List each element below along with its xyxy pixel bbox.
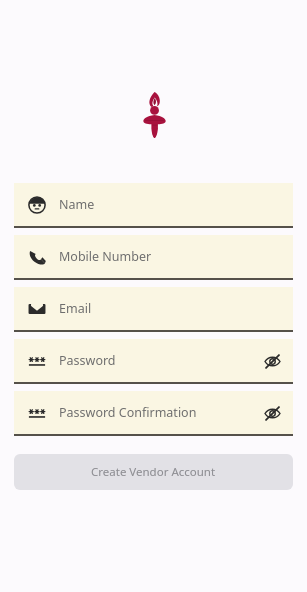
other: App logo (141, 92, 167, 138)
button[interactable]: Toggle password visibility (255, 396, 289, 430)
staticText: Email (59, 300, 92, 317)
staticText: Create Vendor Account (91, 464, 216, 480)
button[interactable]: Name (14, 183, 293, 228)
button[interactable]: Password (14, 339, 293, 384)
staticText: Password (59, 352, 116, 369)
button[interactable]: Toggle password visibility (255, 344, 289, 378)
button[interactable]: Password Confirmation (14, 391, 293, 436)
button[interactable]: Mobile Number (14, 235, 293, 280)
staticText: Password Confirmation (59, 404, 197, 421)
staticText: Name (59, 196, 95, 213)
button[interactable]: Create Vendor Account (14, 454, 293, 490)
button[interactable]: Email (14, 287, 293, 332)
staticText: Mobile Number (59, 248, 152, 265)
